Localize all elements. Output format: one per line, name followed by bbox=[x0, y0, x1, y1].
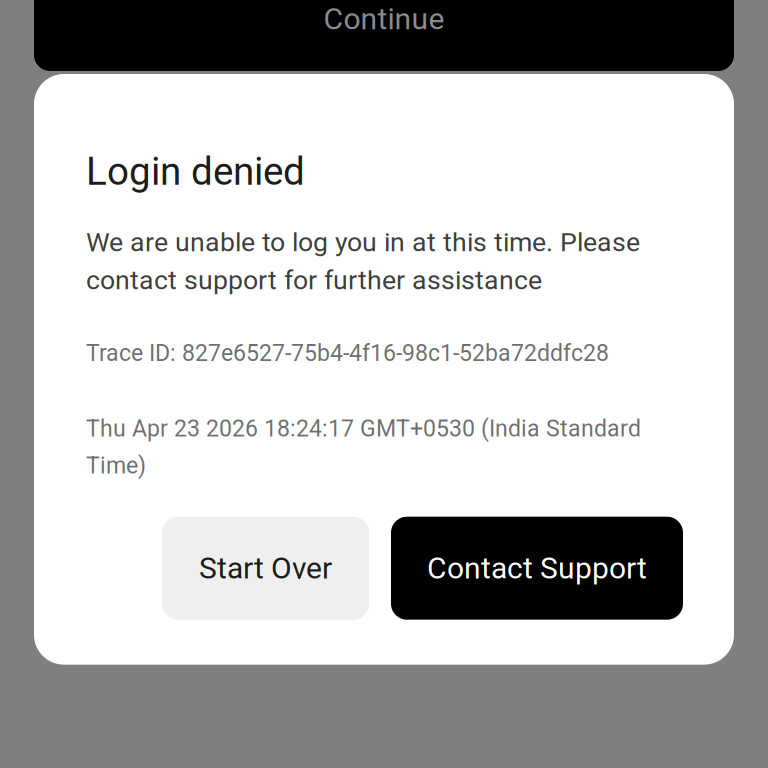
button[interactable]: Start Over bbox=[162, 517, 369, 620]
staticText: Continue bbox=[323, 1, 444, 37]
staticText: Trace ID: 827e6527-75b4-4f16-98c1-52ba72… bbox=[86, 335, 609, 372]
staticText: Thu Apr 23 2026 18:24:17 GMT+0530 (India… bbox=[86, 410, 641, 484]
button[interactable]: Continue bbox=[34, 0, 734, 71]
button[interactable]: Contact Support bbox=[391, 517, 683, 620]
staticText: Login denied bbox=[86, 149, 305, 194]
staticText: Contact Support bbox=[427, 551, 647, 586]
staticText: We are unable to log you in at this time… bbox=[86, 223, 640, 299]
staticText: Start Over bbox=[199, 551, 332, 586]
